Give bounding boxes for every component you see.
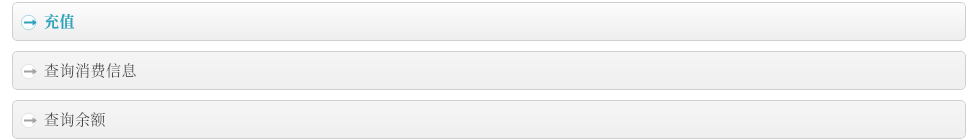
button[interactable]: 查询消费信息: [12, 51, 966, 90]
button[interactable]: 充值: [12, 2, 966, 41]
staticText: 查询余额: [44, 108, 107, 130]
staticText: 查询消费信息: [44, 59, 138, 81]
staticText: 充值: [44, 10, 76, 32]
button[interactable]: 查询余额: [12, 100, 966, 139]
